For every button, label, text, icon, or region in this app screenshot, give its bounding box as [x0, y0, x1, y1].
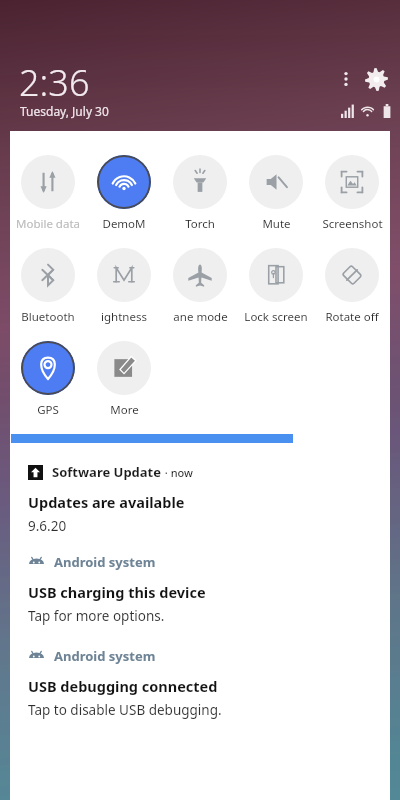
staticText: Torch: [185, 216, 215, 232]
button[interactable]: Brightness: [11, 431, 389, 445]
button[interactable]: DemoM: [86, 155, 162, 232]
button[interactable]: Android system: [10, 553, 390, 625]
staticText: More: [110, 402, 139, 418]
staticText: Tap to disable USB debugging.: [28, 701, 222, 719]
staticText: 2:36: [19, 58, 90, 107]
staticText: Mobile data: [16, 216, 80, 232]
staticText: DemoM: [102, 216, 146, 232]
staticText: Mute: [262, 216, 291, 232]
button[interactable]: Mobile data: [10, 155, 86, 232]
staticText: Android system: [54, 647, 156, 665]
button[interactable]: Settings: [360, 62, 392, 96]
staticText: USB charging this device: [28, 582, 206, 602]
button[interactable]: ane mode: [162, 248, 238, 325]
staticText: Updates are available: [28, 492, 185, 512]
staticText: GPS: [37, 402, 59, 418]
button[interactable]: Mute: [238, 155, 314, 232]
button[interactable]: GPS: [10, 341, 86, 418]
staticText: Android system: [54, 553, 156, 571]
button[interactable]: Torch: [162, 155, 238, 232]
button[interactable]: More options: [333, 62, 359, 96]
staticText: · now: [162, 465, 193, 480]
staticText: Lock screen: [244, 309, 308, 325]
staticText: USB debugging connected: [28, 676, 218, 696]
button[interactable]: Bluetooth: [10, 248, 86, 325]
staticText: Tuesday, July 30: [20, 103, 109, 119]
staticText: Bluetooth: [21, 309, 75, 325]
button[interactable]: Lock screen: [238, 248, 314, 325]
staticText: Tap for more options.: [28, 607, 165, 625]
button[interactable]: ightness: [86, 248, 162, 325]
button[interactable]: Rotate off: [314, 248, 390, 325]
staticText: Software Update: [52, 463, 162, 481]
button[interactable]: More: [86, 341, 162, 418]
staticText: 9.6.20: [28, 517, 67, 535]
staticText: ightness: [101, 309, 147, 325]
staticText: Rotate off: [325, 309, 379, 325]
button[interactable]: Android system: [10, 647, 390, 719]
button[interactable]: Software Update: [10, 463, 390, 535]
button[interactable]: Screenshot: [314, 155, 390, 232]
staticText: Screenshot: [322, 216, 383, 232]
staticText: ane mode: [173, 309, 228, 325]
